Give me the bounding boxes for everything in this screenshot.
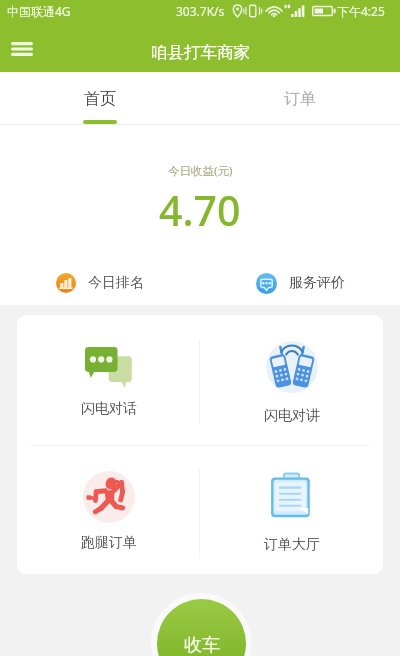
- staticText: 闪电对话: [81, 400, 137, 418]
- button[interactable]: 首页: [0, 72, 200, 125]
- staticText: 下午4:25: [337, 3, 385, 19]
- staticText: 首页: [84, 89, 116, 109]
- staticText: 订单大厅: [264, 536, 320, 554]
- staticText: 跑腿订单: [81, 534, 137, 552]
- staticText: 服务评价: [289, 274, 345, 292]
- button[interactable]: Menu: [0, 26, 45, 72]
- staticText: 中国联通4G: [7, 3, 71, 19]
- staticText: 今日排名: [88, 274, 144, 292]
- staticText: 303.7K/s: [176, 3, 225, 19]
- button[interactable]: 订单大厅: [200, 445, 383, 574]
- button[interactable]: 闪电对话: [17, 315, 200, 445]
- staticText: 订单: [284, 89, 316, 109]
- button[interactable]: 今日排名: [0, 264, 200, 302]
- staticText: 4.70: [159, 182, 241, 238]
- button[interactable]: 订单: [200, 72, 400, 125]
- button[interactable]: 闪电对讲: [200, 315, 383, 445]
- staticText: 收车: [184, 634, 220, 656]
- staticText: 今日收益(元): [168, 163, 233, 179]
- button[interactable]: 跑腿订单: [17, 445, 200, 574]
- staticText: 咱县打车商家: [151, 42, 250, 63]
- staticText: 闪电对讲: [264, 407, 320, 425]
- button[interactable]: 服务评价: [200, 264, 400, 302]
- button[interactable]: 收车: [151, 593, 251, 656]
